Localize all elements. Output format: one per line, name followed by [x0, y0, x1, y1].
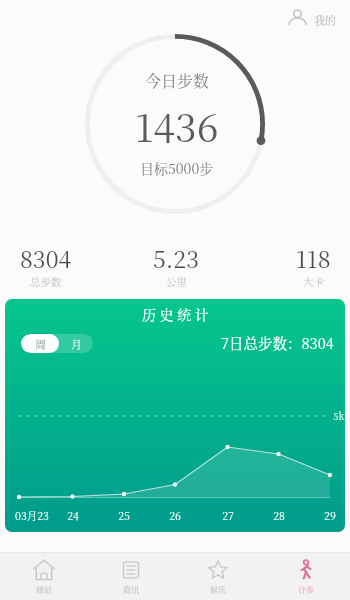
staticText: 大卡 — [303, 274, 324, 289]
staticText: 驿站 — [36, 584, 52, 595]
staticText: 我的 — [314, 12, 336, 28]
staticText: 26 — [150, 508, 200, 523]
staticText: 8304 — [20, 242, 72, 275]
staticText: 今日步数 — [145, 69, 210, 92]
button[interactable]: 5.23 — [126, 242, 226, 290]
staticText: 24 — [48, 508, 98, 523]
staticText: 28 — [254, 508, 304, 523]
staticText: 计步 — [298, 584, 314, 595]
staticText: 29 — [305, 508, 345, 523]
staticText: 资讯 — [123, 584, 139, 595]
staticText: 月 — [71, 336, 82, 352]
button[interactable]: 118 — [263, 242, 350, 290]
staticText: 娱乐 — [210, 584, 226, 595]
staticText: 1436 — [135, 97, 219, 153]
staticText: 5k — [333, 408, 345, 422]
button[interactable]: 周 — [21, 334, 59, 353]
button[interactable]: 8304 — [0, 242, 96, 290]
staticText: 总步数 — [30, 274, 62, 289]
staticText: 目标5000步 — [140, 158, 214, 178]
staticText: 公里 — [166, 274, 187, 289]
staticText: 7日总步数：8304 — [221, 332, 334, 353]
staticText: 27 — [203, 508, 253, 523]
staticText: 周 — [35, 336, 46, 352]
button[interactable]: 资讯 — [87, 553, 174, 600]
button[interactable]: 驿站 — [0, 553, 87, 600]
button[interactable]: 计步 — [262, 553, 350, 600]
button[interactable]: 我的 — [286, 7, 338, 29]
staticText: 25 — [99, 508, 149, 523]
staticText: 118 — [296, 242, 331, 275]
staticText: 03月23 — [7, 508, 57, 523]
staticText: 5.23 — [153, 242, 199, 275]
staticText: 历史统计 — [142, 304, 213, 324]
button[interactable]: 娱乐 — [174, 553, 262, 600]
button[interactable]: 月 — [59, 334, 93, 353]
